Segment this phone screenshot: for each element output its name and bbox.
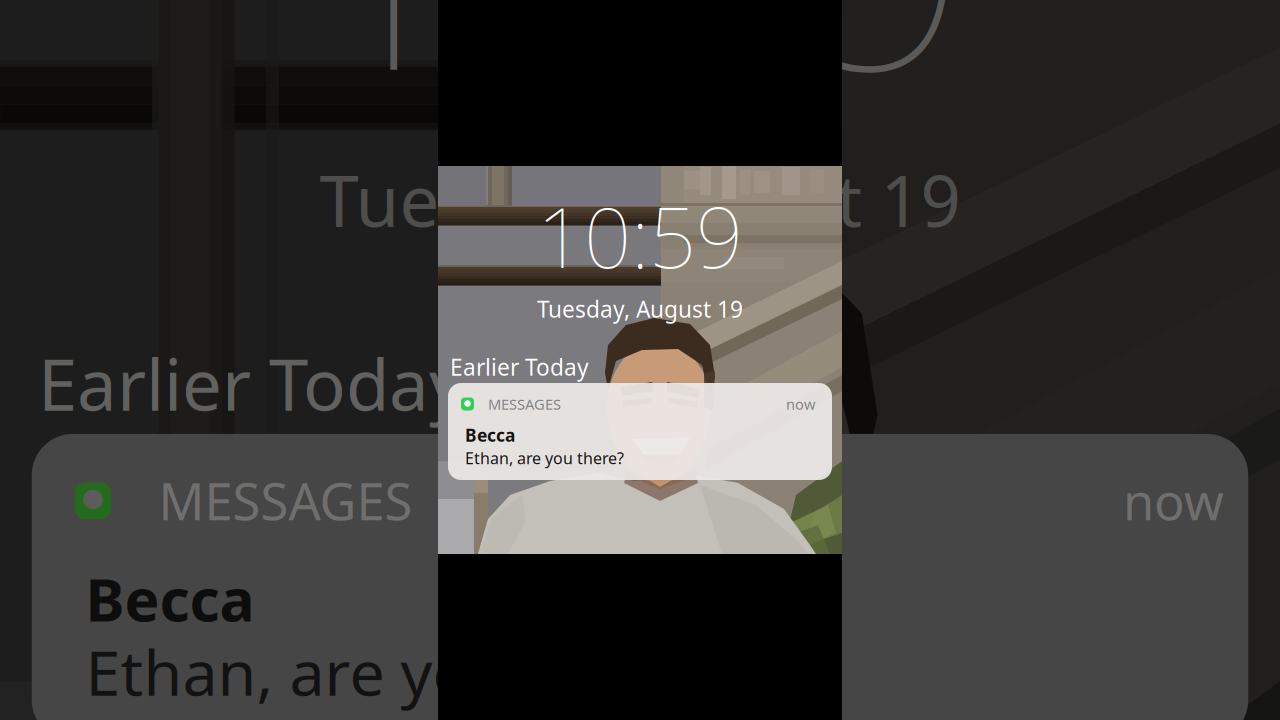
staticText: now [786,394,816,414]
staticText: Ethan, are you there? [86,630,710,713]
staticText: Becca [86,560,255,638]
button[interactable]: MESSAGES [0,0,1280,720]
staticText: Becca [465,423,515,446]
staticText: MESSAGES [158,467,412,534]
staticText: MESSAGES [488,394,561,414]
staticText: Earlier Today [38,336,465,430]
staticText: 10:59 [537,181,743,291]
staticText: Tuesday, August 19 [537,294,743,324]
staticText: Tuesday, August 19 [319,153,960,246]
staticText: now [1123,467,1224,534]
staticText: Earlier Today [450,352,589,382]
staticText: Ethan, are you there? [465,447,624,469]
staticText: 10:59 [313,0,966,142]
